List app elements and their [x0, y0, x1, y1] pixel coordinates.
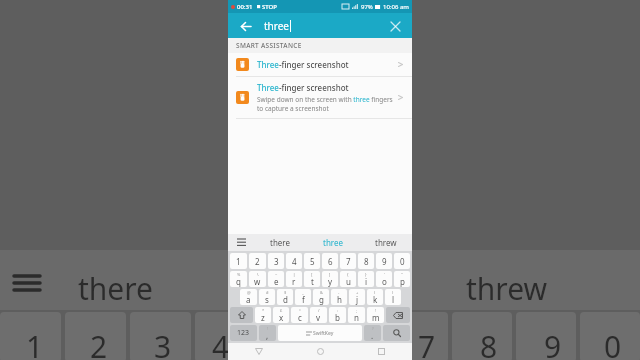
button[interactable]: ? — [364, 325, 381, 341]
button[interactable]: # — [259, 289, 275, 305]
staticText: } — [365, 272, 367, 277]
staticText: h — [337, 294, 342, 305]
staticText: @ — [247, 290, 251, 295]
staticText: 4 — [292, 256, 297, 267]
button[interactable]: [ — [304, 271, 320, 287]
staticText: 1 — [236, 256, 241, 267]
staticText: _ — [302, 290, 304, 295]
button[interactable]: Search — [383, 325, 410, 341]
button[interactable]: ' — [376, 271, 392, 287]
staticText: c — [298, 312, 302, 323]
button[interactable]: 1 — [230, 253, 247, 269]
button[interactable]: $ — [277, 289, 293, 305]
staticText: 10:06 am — [383, 3, 409, 11]
button[interactable]: 7 — [340, 253, 356, 269]
staticText: % — [237, 272, 241, 277]
button[interactable]: | — [286, 271, 302, 287]
staticText: z — [261, 312, 265, 323]
staticText: Three-finger screenshot — [257, 59, 349, 70]
button[interactable]: " — [394, 271, 410, 287]
staticText: three — [264, 19, 289, 33]
staticText: 5 — [310, 256, 315, 267]
button[interactable]: Clear search — [386, 17, 404, 35]
button[interactable]: 9 — [376, 253, 392, 269]
button[interactable]: Three-finger screenshot — [228, 77, 412, 118]
staticText: 2 — [90, 326, 108, 360]
button[interactable]: 2 — [249, 253, 266, 269]
button[interactable]: Home — [290, 343, 351, 360]
button[interactable]: ) — [385, 289, 401, 305]
staticText: & — [320, 290, 323, 295]
button[interactable] — [230, 307, 253, 323]
staticText: v — [316, 312, 321, 323]
button[interactable]: & — [313, 289, 329, 305]
button[interactable]: ~ — [268, 271, 284, 287]
button[interactable]: ! — [259, 325, 276, 341]
staticText: threw — [375, 237, 397, 248]
button[interactable]: \ — [249, 271, 266, 287]
staticText: there — [78, 268, 153, 309]
staticText: 00:31 — [237, 3, 253, 11]
staticText: : — [337, 308, 339, 313]
staticText: ) — [392, 290, 394, 295]
button[interactable]: Recent apps — [351, 343, 412, 360]
button[interactable]: £ — [273, 307, 289, 323]
staticText: . — [371, 330, 374, 341]
staticText: there — [270, 237, 290, 248]
button[interactable]: 0 — [394, 253, 410, 269]
staticText: ? — [372, 326, 374, 331]
button[interactable]: three — [306, 234, 359, 251]
button[interactable]: ; — [348, 307, 365, 323]
button[interactable]: * — [255, 307, 271, 323]
staticText: | — [293, 272, 296, 277]
button[interactable]: ! — [367, 307, 384, 323]
staticText: Three-finger screenshot — [257, 82, 349, 93]
button[interactable]: SwiftKey — [278, 325, 362, 341]
button[interactable]: @ — [240, 289, 257, 305]
staticText: n — [354, 312, 359, 323]
button[interactable]: 123 — [230, 325, 257, 341]
staticText: 7 — [346, 256, 351, 267]
staticText: t — [311, 276, 314, 287]
staticText: p — [400, 276, 405, 287]
button[interactable]: } — [358, 271, 374, 287]
staticText: , — [266, 330, 269, 341]
staticText: d — [283, 294, 288, 305]
button[interactable]: 8 — [358, 253, 374, 269]
staticText: ' — [384, 272, 385, 277]
button[interactable]: threw — [359, 234, 412, 251]
button[interactable]: { — [340, 271, 356, 287]
staticText: ~ — [275, 272, 278, 277]
button[interactable]: + — [349, 289, 365, 305]
button[interactable]: 6 — [322, 253, 338, 269]
button[interactable]: Three-finger screenshot — [228, 53, 412, 76]
button[interactable]: Back — [236, 17, 254, 35]
staticText: f — [302, 294, 305, 305]
button[interactable]: Back — [228, 343, 290, 360]
button[interactable]: ( — [367, 289, 383, 305]
staticText: l — [392, 294, 395, 305]
staticText: $ — [284, 290, 287, 295]
button[interactable]: 4 — [286, 253, 302, 269]
staticText: three — [323, 237, 343, 248]
button[interactable]: % — [230, 271, 247, 287]
staticText: ] — [329, 272, 331, 277]
staticText: 123 — [237, 328, 250, 338]
button[interactable]: there — [254, 234, 306, 251]
button[interactable]: / — [310, 307, 327, 323]
button[interactable]: 3 — [268, 253, 284, 269]
button[interactable]: Keyboard menu — [228, 234, 254, 251]
staticText: + — [356, 290, 359, 295]
staticText: 9 — [382, 256, 387, 267]
button[interactable]: ] — [322, 271, 338, 287]
button[interactable] — [386, 307, 410, 323]
button[interactable]: - — [331, 289, 347, 305]
staticText: [ — [311, 272, 313, 277]
button[interactable]: 5 — [304, 253, 320, 269]
button[interactable]: : — [329, 307, 346, 323]
staticText: b — [335, 312, 340, 323]
button[interactable]: ° — [291, 307, 308, 323]
staticText: { — [347, 272, 349, 277]
staticText: 2 — [255, 256, 260, 267]
button[interactable]: _ — [295, 289, 311, 305]
